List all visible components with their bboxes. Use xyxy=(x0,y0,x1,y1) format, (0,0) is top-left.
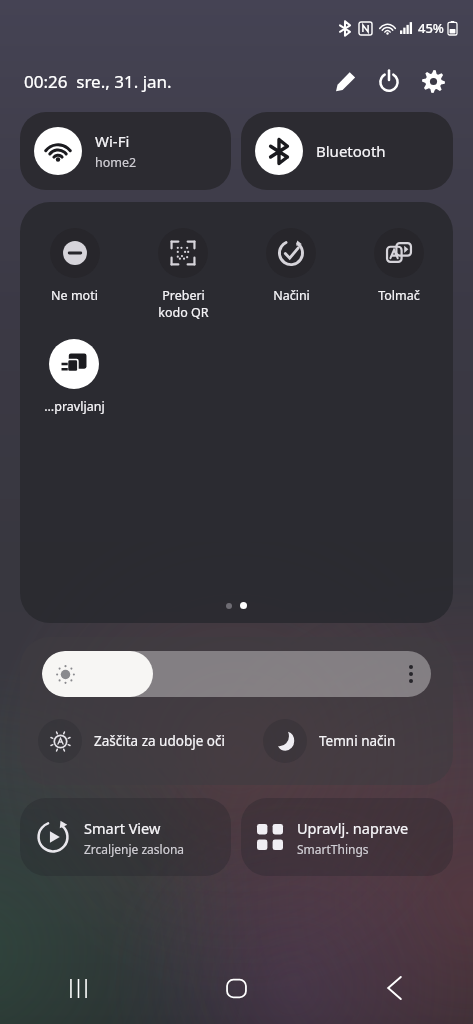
staticText: home2 xyxy=(95,154,137,171)
button[interactable]: Settings xyxy=(411,59,455,103)
button[interactable]: Recents xyxy=(0,952,157,1024)
staticText: 45% xyxy=(418,19,444,37)
button[interactable]: Home xyxy=(157,952,315,1024)
button[interactable]: Back xyxy=(315,952,473,1024)
button[interactable]: Brightness xyxy=(42,651,431,697)
button[interactable]: Smart View xyxy=(20,798,231,876)
button[interactable]: Tolmač xyxy=(345,226,453,306)
button[interactable]: Power xyxy=(367,59,411,103)
staticText: Ne moti xyxy=(51,287,98,304)
staticText: Upravlj. naprave xyxy=(297,818,409,838)
button[interactable]: Wi-Fi xyxy=(20,112,231,190)
button[interactable]: Ne moti xyxy=(20,226,129,306)
button[interactable]: Preberi kodo QR xyxy=(129,226,237,323)
button[interactable]: Bluetooth xyxy=(241,112,453,190)
button[interactable]: …pravljanj xyxy=(20,337,128,417)
button[interactable]: Načini xyxy=(237,226,345,306)
staticText: Bluetooth xyxy=(316,141,386,161)
button[interactable]: Edit xyxy=(323,59,367,103)
staticText: …pravljanj xyxy=(44,398,105,415)
staticText: Smart View xyxy=(84,818,161,838)
staticText: Zrcaljenje zaslona xyxy=(84,841,185,857)
staticText: Temni način xyxy=(319,732,396,750)
staticText: Zaščita za udobje oči xyxy=(94,732,225,750)
staticText: Tolmač xyxy=(378,287,420,304)
button[interactable]: Temni način xyxy=(263,715,435,767)
staticText: Wi-Fi xyxy=(95,131,130,151)
button[interactable]: Zaščita za udobje oči xyxy=(38,715,259,767)
staticText: 00:26 sre., 31. jan. xyxy=(24,70,172,93)
staticText: SmartThings xyxy=(297,841,369,857)
staticText: Načini xyxy=(273,287,310,304)
staticText: Preberi kodo QR xyxy=(158,287,209,321)
button[interactable]: Upravlj. naprave xyxy=(241,798,453,876)
